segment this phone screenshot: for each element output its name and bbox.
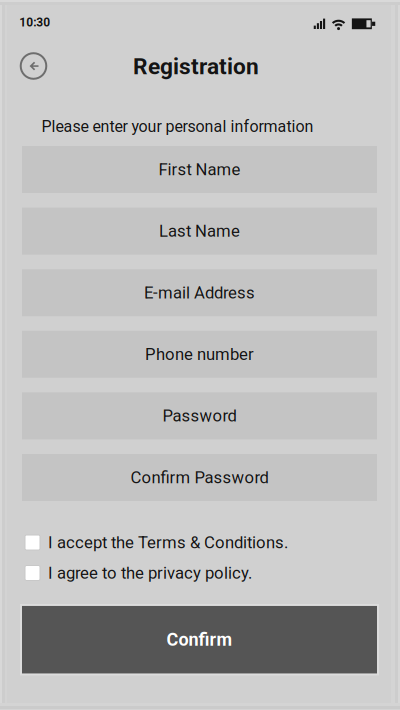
staticText: I accept the Terms & Conditions. (48, 533, 288, 552)
staticText: Confirm Password (130, 468, 268, 487)
button[interactable]: I agree to the privacy policy. (25, 562, 355, 584)
staticText: Registration (133, 53, 259, 80)
button[interactable]: Last Name (22, 208, 377, 255)
button[interactable]: Confirm Password (22, 454, 377, 501)
button[interactable]: First Name (22, 146, 377, 193)
staticText: I agree to the privacy policy. (48, 563, 252, 583)
staticText: Phone number (145, 344, 254, 364)
button[interactable]: Confirm (20, 604, 379, 675)
staticText: Password (162, 406, 236, 426)
button[interactable]: Password (22, 392, 377, 439)
button[interactable]: I accept the Terms & Conditions. (25, 531, 355, 553)
staticText: E-mail Address (144, 283, 255, 302)
staticText: Last Name (159, 221, 240, 241)
staticText: Please enter your personal information (41, 117, 313, 136)
button[interactable]: Back (16, 49, 50, 83)
staticText: Confirm (166, 629, 232, 650)
staticText: First Name (158, 160, 240, 179)
staticText: 10:30 (19, 15, 50, 29)
button[interactable]: E-mail Address (22, 269, 377, 316)
button[interactable]: Phone number (22, 331, 377, 378)
